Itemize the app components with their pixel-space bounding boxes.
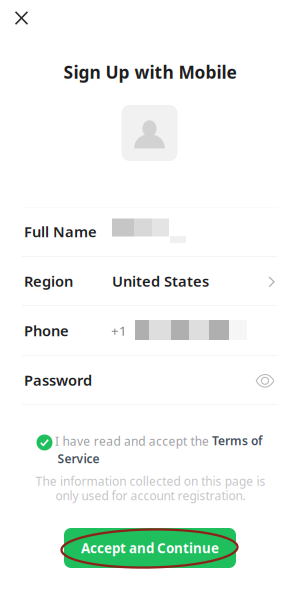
- button[interactable]: Password: [22, 356, 278, 404]
- button[interactable]: Phone: [22, 306, 278, 354]
- staticText: Sign Up with Mobile: [63, 60, 236, 83]
- staticText: Service: [57, 450, 99, 466]
- staticText: only used for account registration.: [55, 487, 245, 503]
- button[interactable]: Accept and Continue: [64, 528, 236, 568]
- staticText: Password: [24, 370, 92, 390]
- button[interactable]: Region: [22, 257, 278, 305]
- button[interactable]: Close: [4, 1, 38, 35]
- button[interactable]: Full Name: [22, 207, 278, 255]
- button[interactable]: Accept terms: [33, 431, 53, 451]
- staticText: Region: [24, 271, 73, 291]
- staticText: United States: [112, 271, 209, 291]
- button[interactable]: Terms of: [212, 432, 262, 448]
- staticText: +1: [111, 322, 127, 339]
- staticText: I have read and accept the: [55, 433, 209, 449]
- staticText: The information collected on this page i…: [35, 473, 266, 489]
- staticText: Terms of: [212, 432, 262, 448]
- staticText: Accept and Continue: [81, 539, 219, 557]
- button[interactable]: Service: [57, 450, 99, 466]
- staticText: Full Name: [24, 222, 97, 241]
- staticText: Phone: [24, 321, 69, 340]
